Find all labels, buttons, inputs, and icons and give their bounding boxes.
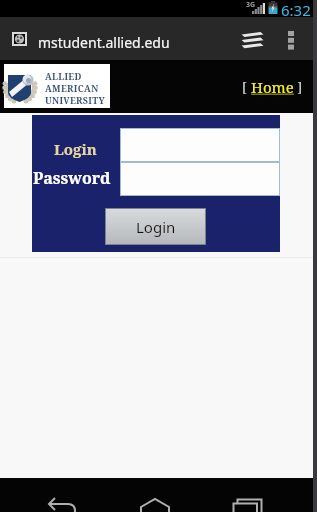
button[interactable] — [233, 478, 263, 512]
staticText: Home — [251, 77, 294, 97]
staticText: Password — [33, 167, 111, 189]
staticText: 3G — [246, 0, 256, 10]
staticText: [ — [242, 78, 251, 96]
staticText: mstudent.allied.edu — [38, 33, 170, 52]
staticText: AMERICAN — [45, 82, 99, 94]
button[interactable]: [ — [242, 77, 303, 97]
staticText: ] — [294, 78, 303, 96]
button[interactable] — [241, 31, 266, 50]
staticText: ALLIED — [45, 70, 82, 82]
staticText: Login — [54, 139, 97, 159]
button[interactable] — [42, 478, 78, 512]
staticText: 6:32 — [281, 0, 311, 17]
staticText: Login — [136, 217, 176, 237]
staticText: UNIVERSITY — [45, 94, 105, 106]
button[interactable]: Login — [105, 208, 206, 245]
button[interactable] — [138, 478, 172, 512]
button[interactable] — [288, 31, 295, 50]
